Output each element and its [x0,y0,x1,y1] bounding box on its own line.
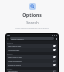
button[interactable]: Group by source [7,63,57,67]
button[interactable]: Safe search filter [7,44,57,48]
staticText: Options [22,12,42,19]
staticText: Safe search filter [8,45,53,47]
staticText: Open links in app [8,56,53,58]
button[interactable]: Autocomplete [7,48,57,52]
button[interactable]: More options [55,38,57,40]
staticText: Group by source [8,64,53,66]
staticText: Privacy [7,68,13,70]
button[interactable]: Search options [10,37,54,40]
staticText: Search [26,20,39,25]
staticText: Autocomplete [8,49,53,51]
staticText: General [7,42,13,44]
staticText: Tune result behaviour and filters [3,27,61,30]
button[interactable]: Open links in app [7,55,57,59]
staticText: Results [7,53,13,55]
button[interactable]: Show thumbnails [7,59,57,63]
staticText: Save history [8,70,53,72]
button[interactable]: Back [7,38,9,40]
staticText: Show thumbnails [8,60,53,62]
button[interactable]: Search options [29,3,36,10]
button[interactable]: Save history [7,70,57,72]
staticText: Search options [11,38,24,40]
